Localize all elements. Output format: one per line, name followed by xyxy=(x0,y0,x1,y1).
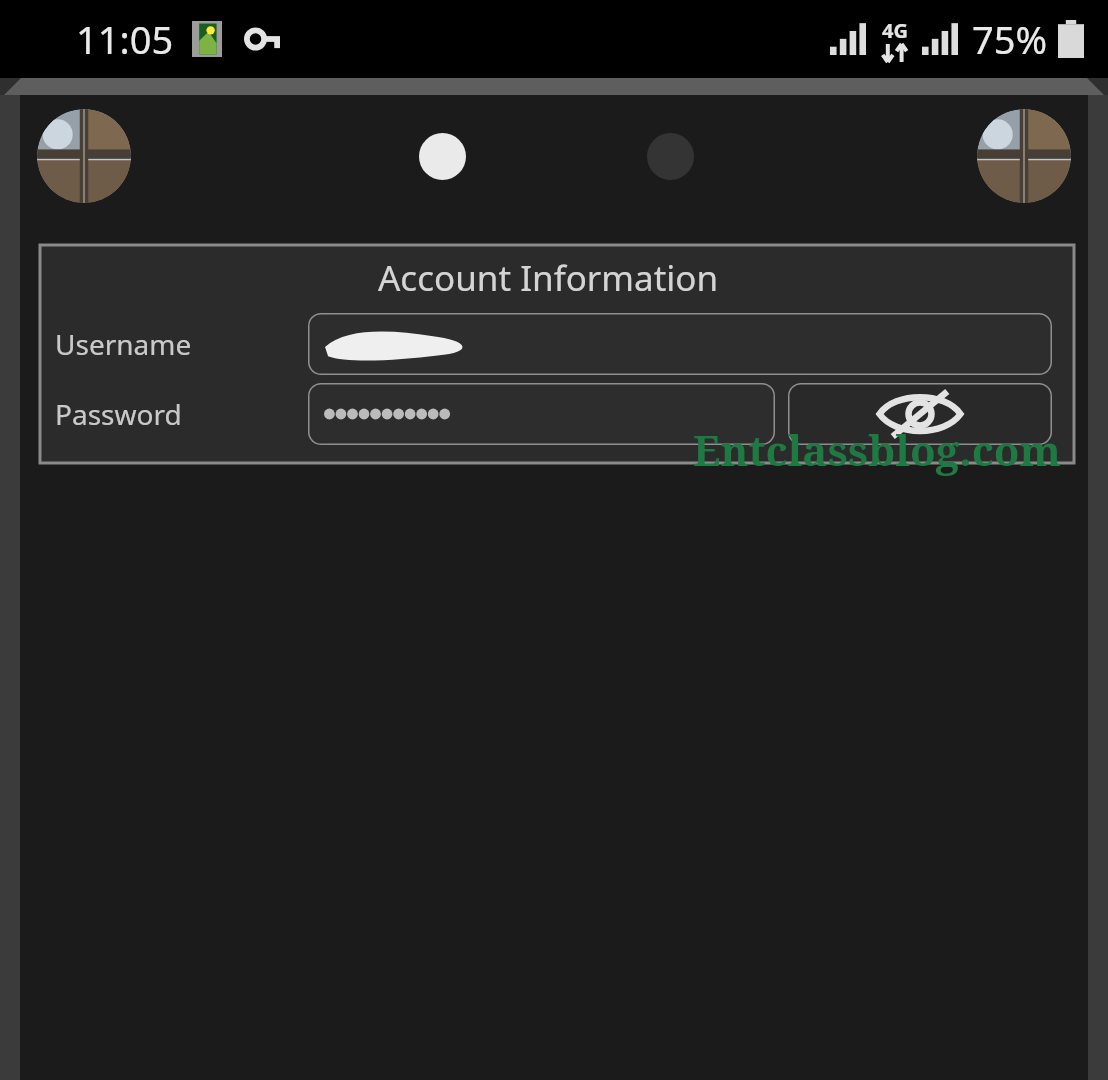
button[interactable]: Page 1 xyxy=(419,133,466,180)
staticText: 4G xyxy=(882,17,908,44)
button[interactable]: Page 2 xyxy=(647,133,694,180)
staticText: Password xyxy=(55,395,308,433)
button[interactable]: Photo xyxy=(37,109,131,203)
button[interactable] xyxy=(308,313,1052,375)
staticText: Entclassblog.com xyxy=(693,421,1062,478)
button[interactable]: Hide password xyxy=(788,383,1052,445)
other: Battery xyxy=(1058,20,1084,58)
staticText: Account Information xyxy=(378,254,719,302)
staticText: 11:05 xyxy=(76,13,174,65)
staticText: Username xyxy=(55,325,308,363)
button[interactable] xyxy=(308,383,775,445)
staticText: 75% xyxy=(972,13,1048,65)
button[interactable]: Photo xyxy=(977,109,1071,203)
other: VPN xyxy=(244,27,280,51)
